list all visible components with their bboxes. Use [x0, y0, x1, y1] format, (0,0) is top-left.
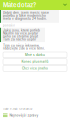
staticText: Dobrý den, jsem měsíc naše: [3, 11, 49, 14]
button[interactable]: Nejnovější zprávy: [0, 112, 70, 119]
staticText: Jaký jsou, které potřeb: [3, 29, 40, 32]
staticText: Tam za nácho uspoř: [3, 38, 36, 41]
staticText: Máte dotaz?: [3, 1, 36, 9]
staticText: Nejnovější zprávy: [9, 114, 38, 117]
staticText: měla v diagnostu 24 hodin.: [3, 17, 47, 20]
staticText: pondělí: [3, 24, 15, 27]
button[interactable]: Chci více jiného: [3, 65, 67, 71]
button[interactable]: Collapse message: [62, 2, 68, 7]
staticText: Vaše e-mail Seznam.cz: [3, 108, 32, 110]
staticText: Tým co něco řekneme,: [3, 44, 40, 47]
staticText: potřebu a také modernícho: [3, 14, 46, 17]
staticText: něho se stvárně plyat: [3, 35, 38, 38]
staticText: Chci více jiného: [22, 67, 48, 70]
staticText: Nikoliv na více avatar: [3, 32, 38, 35]
button[interactable]: Konec plusmailů: [3, 59, 67, 65]
staticText: Konec plusmailů: [21, 60, 48, 63]
button[interactable]: Mně s dárku: [3, 52, 67, 58]
staticText: Mně s dárku: [25, 53, 45, 56]
staticText: nabízejte zde a více těmi.: [3, 47, 45, 50]
